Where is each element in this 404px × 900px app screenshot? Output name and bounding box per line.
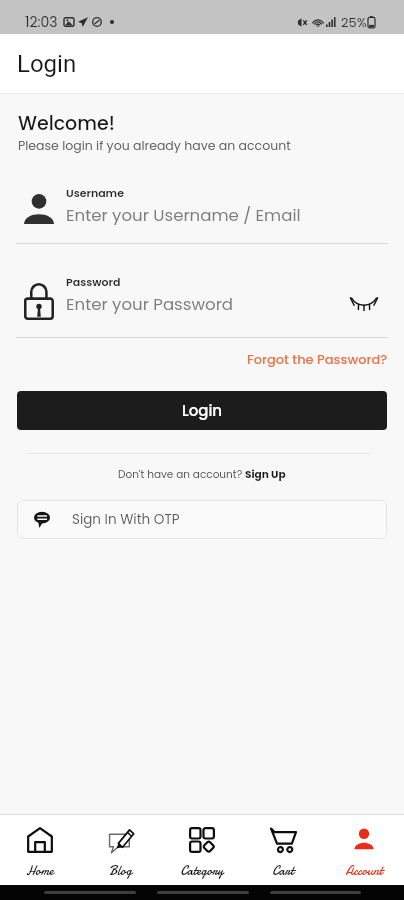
staticText: Account [345, 862, 383, 880]
staticText: 12:03 [25, 12, 58, 32]
staticText: Welcome! [18, 110, 115, 137]
staticText: Username [66, 185, 124, 200]
staticText: Password [66, 274, 121, 289]
button[interactable]: Login [17, 391, 387, 430]
button[interactable]: Username [0, 180, 404, 244]
button[interactable]: Forgot the Password? [247, 347, 404, 371]
staticText: Cart [272, 862, 294, 880]
button[interactable]: Cart [242, 814, 323, 885]
button[interactable]: Password [0, 270, 404, 332]
staticText: Login [182, 400, 223, 421]
button[interactable]: Show password [342, 281, 386, 325]
staticText: Enter your Password [66, 293, 234, 316]
button[interactable]: Blog [80, 814, 161, 885]
button[interactable]: Category [161, 814, 242, 885]
staticText: Login [17, 50, 77, 78]
staticText: Don't have an account? [118, 467, 245, 482]
staticText: Sign In With OTP [72, 510, 180, 529]
staticText: Category [180, 862, 224, 880]
staticText: Please login if you already have an acco… [18, 137, 291, 154]
button[interactable]: Sign In With OTP [17, 500, 387, 539]
staticText: 25% [341, 13, 367, 31]
button[interactable]: Sign Up [245, 467, 286, 482]
button[interactable]: Home [0, 814, 80, 885]
button[interactable]: Account [323, 814, 404, 885]
staticText: Home [26, 862, 54, 880]
staticText: Enter your Username / Email [66, 204, 301, 227]
staticText: Blog [109, 862, 132, 880]
